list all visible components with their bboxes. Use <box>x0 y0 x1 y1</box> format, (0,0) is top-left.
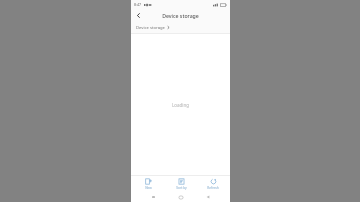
staticText: Device storage <box>162 12 199 19</box>
staticText: Loading <box>172 102 190 108</box>
staticText: 8:47 <box>134 2 142 7</box>
button[interactable]: Recents <box>147 192 159 202</box>
button[interactable]: Device storage <box>131 22 230 33</box>
button[interactable]: Home <box>175 192 187 202</box>
button[interactable]: New <box>133 176 163 192</box>
button[interactable]: Refresh <box>198 176 228 192</box>
staticText: Sort by <box>176 186 187 190</box>
button[interactable]: Back <box>202 192 214 202</box>
button[interactable]: Sort by <box>166 176 196 192</box>
staticText: Refresh <box>207 186 219 190</box>
staticText: Device storage <box>136 25 165 31</box>
staticText: New <box>145 186 152 190</box>
button[interactable]: Back <box>133 10 144 21</box>
